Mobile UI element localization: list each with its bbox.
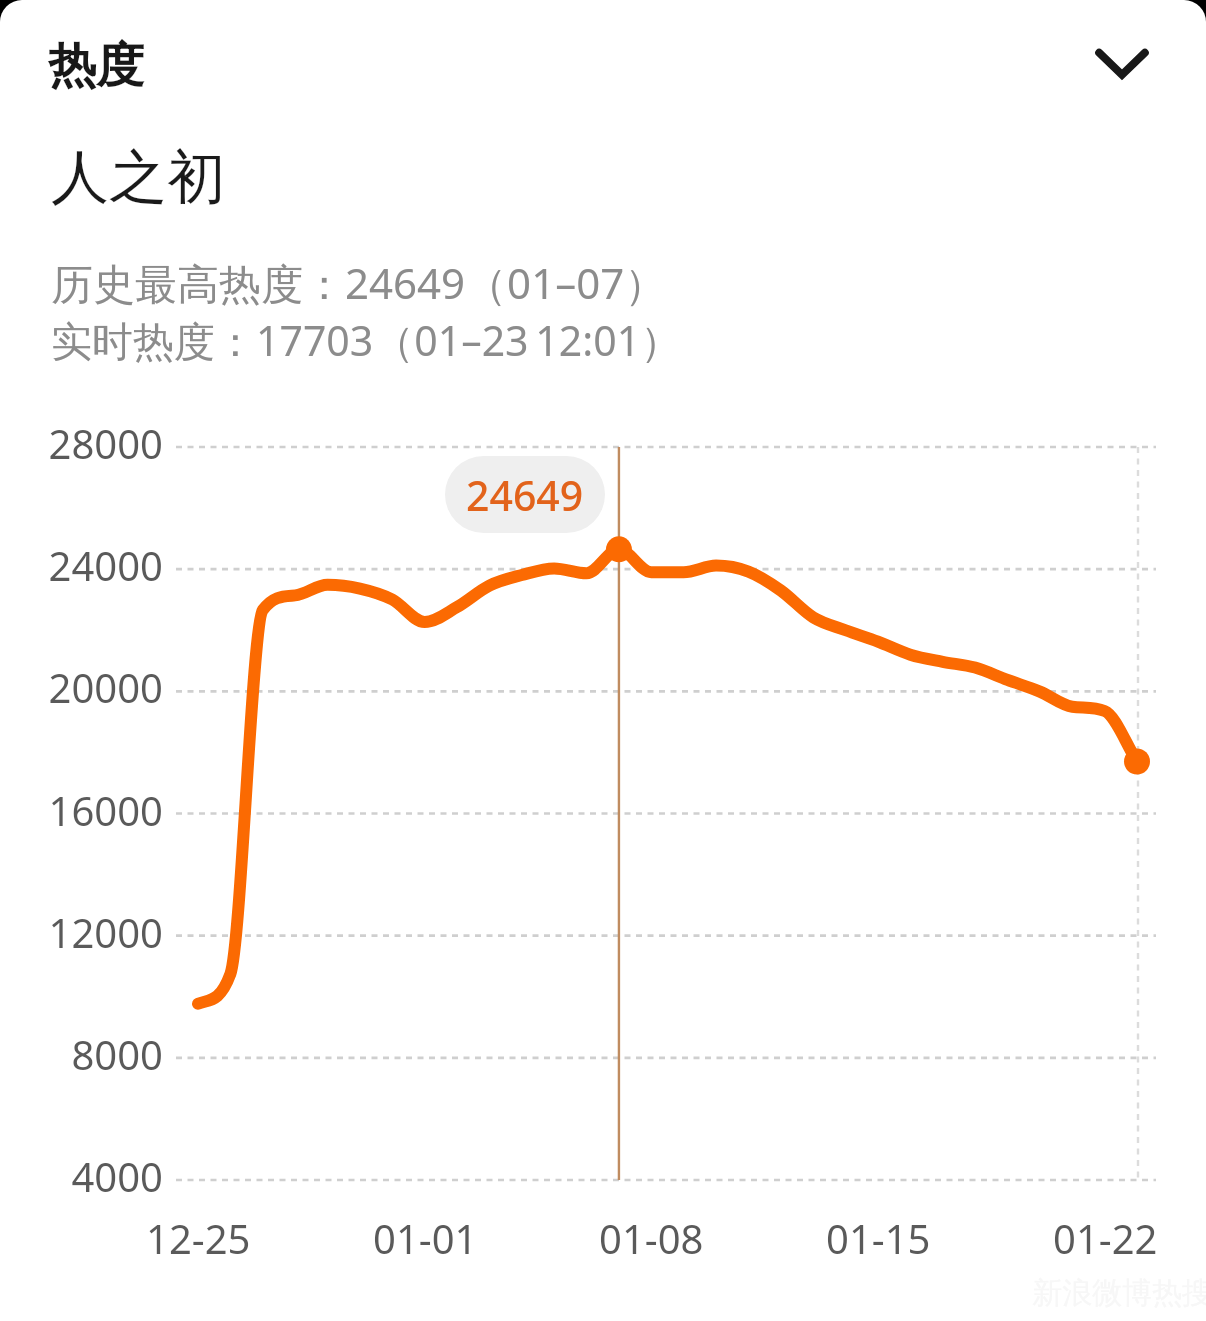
staticText: 8000 xyxy=(71,1027,163,1081)
staticText: 01-01 xyxy=(373,1211,478,1265)
button[interactable]: 热度 xyxy=(0,0,1206,132)
staticText: 人之初 xyxy=(51,141,225,214)
staticText: 4000 xyxy=(71,1149,163,1203)
staticText: 新浪微博热搜榜 xyxy=(1032,1274,1206,1312)
staticText: 24649 xyxy=(466,467,584,523)
staticText: 20000 xyxy=(48,660,163,714)
staticText: 历史最高热度：24649（01–07） xyxy=(51,254,667,311)
button[interactable]: 24649 xyxy=(445,456,605,533)
staticText: 01-08 xyxy=(599,1211,704,1265)
staticText: 24000 xyxy=(48,538,163,592)
staticText: 28000 xyxy=(48,416,163,470)
button[interactable]: Collapse xyxy=(1067,8,1177,118)
staticText: 12000 xyxy=(48,905,163,959)
staticText: 12-25 xyxy=(146,1211,251,1265)
staticText: 热度 xyxy=(48,36,144,96)
staticText: 01-22 xyxy=(1053,1211,1158,1265)
staticText: 实时热度：17703（01–23 12:01） xyxy=(51,312,682,368)
staticText: 01-15 xyxy=(826,1211,931,1265)
staticText: 16000 xyxy=(48,783,163,837)
